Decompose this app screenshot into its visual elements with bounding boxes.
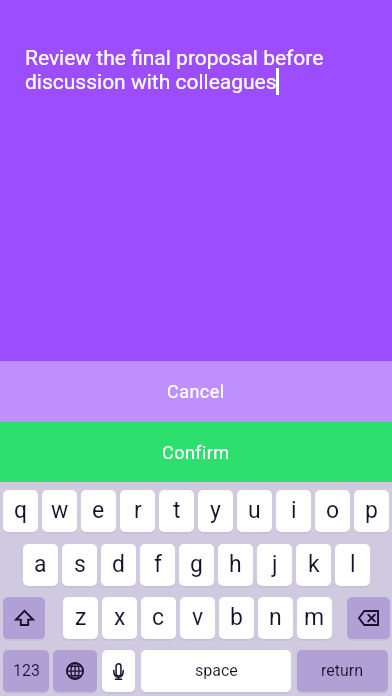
button[interactable]: l [335,544,370,586]
button[interactable]: m [297,597,332,639]
staticText: g [190,551,203,578]
button[interactable]: z [63,597,98,639]
button[interactable]: f [140,544,175,586]
button[interactable]: space [141,650,291,692]
staticText: z [75,604,87,631]
button[interactable]: t [159,490,194,532]
button[interactable]: return [297,650,388,692]
button[interactable]: x [102,597,137,639]
button[interactable]: e [81,490,116,532]
staticText: v [192,604,204,631]
staticText: a [34,551,47,578]
button[interactable]: 123 [3,650,49,692]
staticText: p [365,497,378,524]
button[interactable]: Cancel [0,361,392,422]
button[interactable]: p [354,490,389,532]
staticText: x [114,604,126,631]
button[interactable]: Voice input [102,650,135,692]
button[interactable]: v [180,597,215,639]
button[interactable]: d [101,544,136,586]
staticText: e [92,497,105,524]
staticText: l [350,551,356,578]
staticText: u [248,497,261,524]
staticText: i [291,497,297,524]
button[interactable]: i [276,490,311,532]
button[interactable]: g [179,544,214,586]
staticText: h [229,551,242,578]
staticText: Cancel [167,381,225,402]
button[interactable]: r [120,490,155,532]
button[interactable]: Backspace [347,597,390,639]
button[interactable]: Switch keyboard [53,650,97,692]
button[interactable]: b [219,597,254,639]
button[interactable]: j [257,544,292,586]
staticText: o [326,497,340,524]
staticText: w [51,497,69,524]
button[interactable]: w [42,490,77,532]
staticText: b [230,604,243,631]
button[interactable]: u [237,490,272,532]
staticText: f [154,551,162,578]
button[interactable]: n [258,597,293,639]
staticText: y [210,497,221,524]
button[interactable]: Shift [3,597,45,639]
staticText: t [173,497,181,524]
staticText: space [195,661,238,680]
button[interactable]: k [296,544,331,586]
staticText: 123 [13,661,40,680]
staticText: discussion with colleagues [25,70,277,95]
staticText: r [134,497,142,524]
button[interactable]: c [141,597,176,639]
button[interactable]: s [62,544,97,586]
button[interactable]: y [198,490,233,532]
staticText: q [14,497,28,524]
button[interactable]: o [315,490,350,532]
staticText: return [321,661,364,680]
staticText: c [152,604,165,631]
staticText: n [269,604,282,631]
staticText: Review the final proposal before [25,46,324,71]
button[interactable]: Confirm [0,422,392,482]
staticText: s [74,551,86,578]
staticText: m [304,604,325,631]
staticText: d [112,551,125,578]
staticText: j [272,551,278,578]
button[interactable]: h [218,544,253,586]
button[interactable]: a [23,544,58,586]
button[interactable]: q [3,490,38,532]
staticText: Confirm [162,442,230,463]
staticText: k [308,551,320,578]
